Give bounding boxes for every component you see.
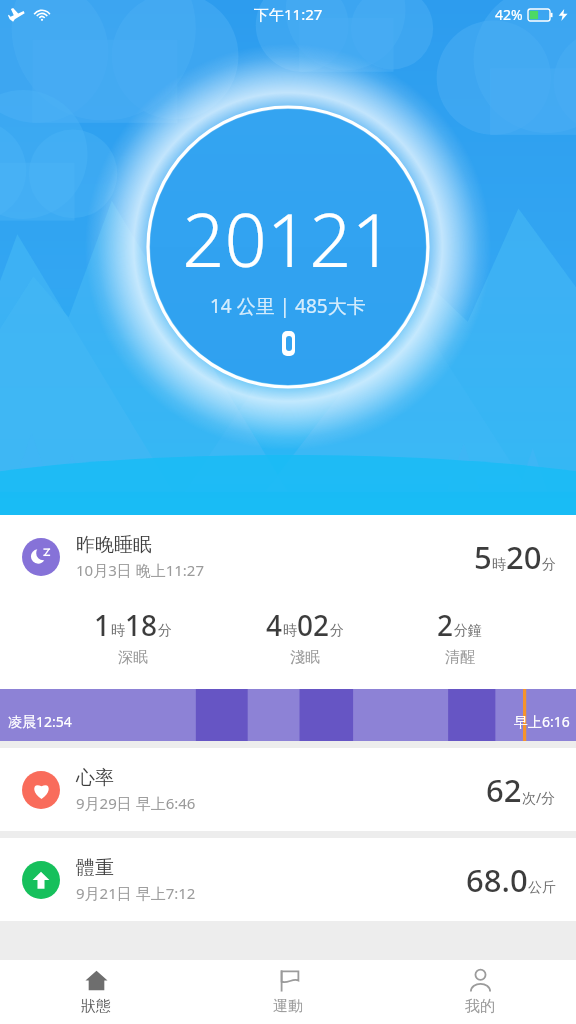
staticText: 昨晚睡眠 [76, 533, 152, 557]
staticText: 凌晨12:54 [8, 712, 72, 731]
staticText: 體重 [76, 856, 114, 880]
staticText: 10月3日 晚上11:27 [76, 560, 204, 580]
staticText: 4 [266, 606, 283, 644]
staticText: 02 [297, 606, 330, 644]
button[interactable]: 體重 [0, 838, 576, 921]
staticText: 分 [542, 556, 556, 574]
staticText: 狀態 [81, 997, 111, 1016]
button[interactable]: 我的 [384, 960, 576, 1024]
staticText: 42% [495, 5, 523, 24]
staticText: 淺眠 [290, 648, 320, 667]
staticText: 分鐘 [454, 622, 482, 640]
staticText: 9月21日 早上7:12 [76, 883, 196, 903]
other: 運動 [277, 969, 300, 992]
staticText: 時 [283, 622, 297, 640]
staticText: 5 [474, 536, 492, 578]
staticText: 心率 [76, 766, 114, 790]
staticText: 20121 [182, 188, 394, 289]
staticText: 分 [330, 622, 344, 640]
staticText: 清醒 [445, 648, 475, 667]
staticText: 公斤 [528, 879, 556, 897]
staticText: 下午11:27 [254, 4, 323, 24]
staticText: 次/分 [522, 788, 556, 807]
other: 我的 [469, 969, 492, 992]
staticText: 時 [111, 622, 125, 640]
button[interactable]: 運動 [192, 960, 384, 1024]
staticText: 14 公里 | 485大卡 [210, 293, 366, 319]
button[interactable]: 心率 [0, 748, 576, 831]
staticText: 時 [492, 556, 506, 574]
button[interactable]: 狀態 [0, 960, 192, 1024]
staticText: 1 [94, 606, 111, 644]
staticText: 深眠 [118, 648, 148, 667]
staticText: 9月29日 早上6:46 [76, 793, 196, 813]
staticText: 分 [158, 622, 172, 640]
button[interactable]: 昨晚睡眠 [0, 515, 576, 741]
other: 狀態 [85, 969, 108, 992]
staticText: 20 [506, 536, 542, 578]
staticText: 2 [437, 606, 454, 644]
staticText: 18 [125, 606, 158, 644]
staticText: 運動 [273, 997, 303, 1016]
staticText: 68.0 [466, 859, 528, 901]
staticText: 我的 [465, 997, 495, 1016]
staticText: 62 [486, 769, 522, 811]
staticText: 早上6:16 [514, 712, 570, 731]
